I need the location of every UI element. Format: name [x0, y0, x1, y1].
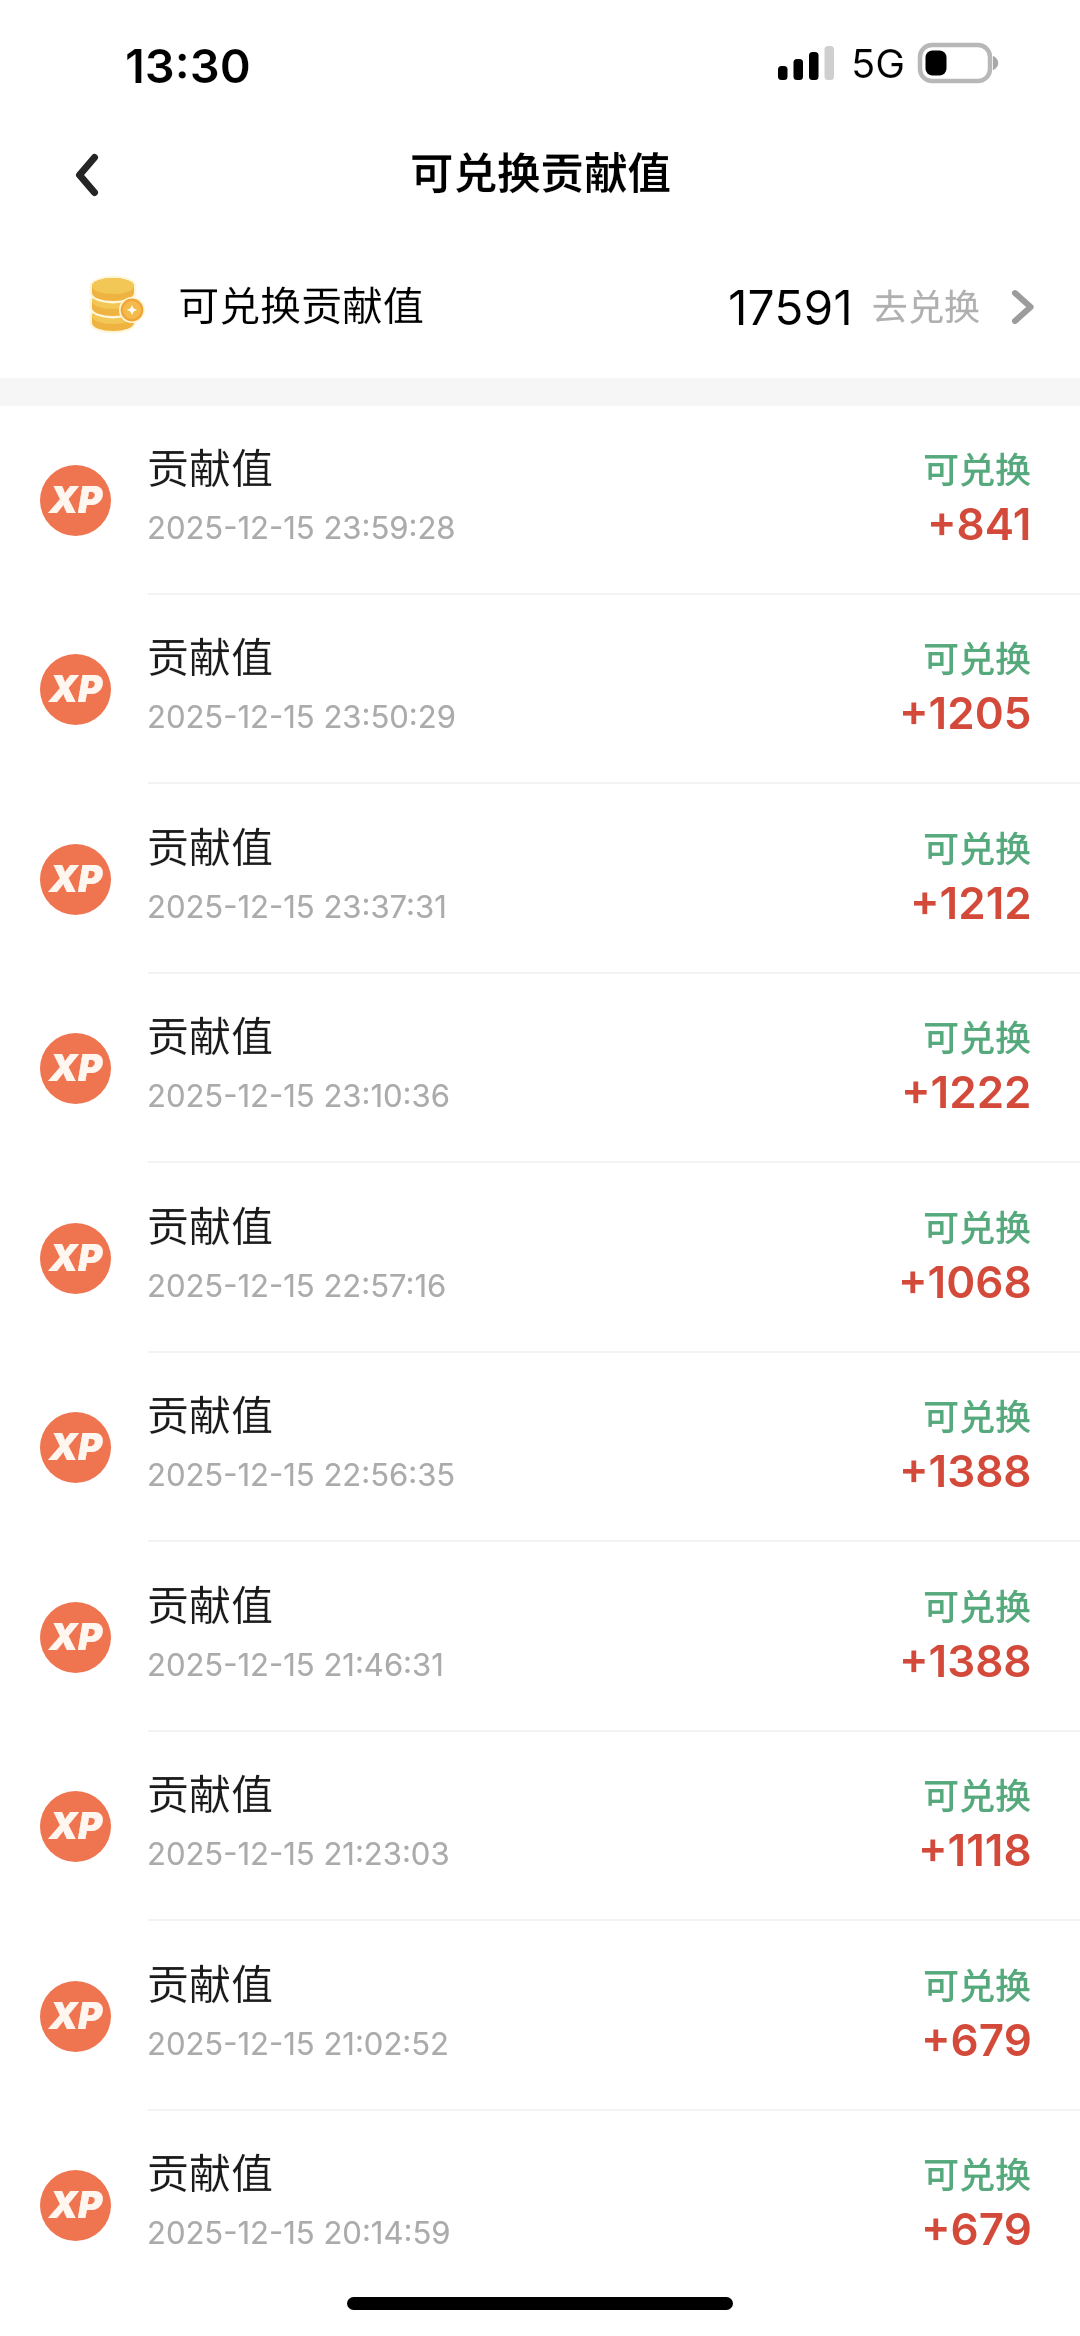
- staticText: 可兑换: [923, 1767, 1032, 1819]
- staticText: 可兑换贡献值: [410, 139, 671, 202]
- staticText: 17591: [728, 278, 853, 336]
- staticText: XP: [49, 1045, 103, 1090]
- staticText: +1118: [918, 1823, 1032, 1876]
- staticText: 可兑换: [923, 630, 1032, 682]
- button[interactable]: XP: [0, 2111, 1080, 2300]
- staticText: 2025-12-15 23:59:28: [147, 509, 456, 547]
- button[interactable]: XP: [0, 1732, 1080, 1921]
- button[interactable]: 可兑换贡献值: [0, 240, 1080, 378]
- staticText: 贡献值: [147, 1572, 274, 1633]
- staticText: +1205: [899, 686, 1032, 739]
- button[interactable]: XP: [0, 1922, 1080, 2111]
- staticText: 贡献值: [147, 814, 274, 875]
- button[interactable]: XP: [0, 974, 1080, 1163]
- staticText: 贡献值: [147, 1003, 274, 1064]
- staticText: 可兑换: [923, 1199, 1032, 1251]
- staticText: 贡献值: [147, 435, 274, 496]
- button[interactable]: XP: [0, 785, 1080, 974]
- staticText: 贡献值: [147, 1761, 274, 1822]
- staticText: 2025-12-15 20:14:59: [147, 2214, 451, 2252]
- staticText: +1388: [899, 1634, 1032, 1687]
- staticText: XP: [49, 2182, 103, 2227]
- staticText: 贡献值: [147, 1382, 274, 1443]
- staticText: XP: [49, 1993, 103, 2038]
- staticText: +679: [921, 2202, 1032, 2255]
- staticText: 2025-12-15 22:56:35: [147, 1456, 456, 1494]
- staticText: XP: [49, 1235, 103, 1280]
- staticText: 2025-12-15 21:46:31: [147, 1646, 444, 1684]
- button[interactable]: XP: [0, 1164, 1080, 1353]
- staticText: 2025-12-15 21:02:52: [147, 2025, 450, 2063]
- staticText: 可兑换: [923, 1578, 1032, 1630]
- staticText: 2025-12-15 22:57:16: [147, 1267, 447, 1305]
- staticText: 可兑换贡献值: [178, 273, 424, 332]
- staticText: XP: [49, 1614, 103, 1659]
- staticText: +1222: [901, 1065, 1032, 1118]
- button[interactable]: XP: [0, 1353, 1080, 1542]
- staticText: 可兑换: [923, 2146, 1032, 2198]
- staticText: +1388: [899, 1444, 1032, 1497]
- staticText: 2025-12-15 21:23:03: [147, 1835, 450, 1873]
- staticText: +1212: [910, 876, 1032, 929]
- staticText: 贡献值: [147, 1193, 274, 1254]
- staticText: 可兑换: [923, 1388, 1032, 1440]
- staticText: 贡献值: [147, 1951, 274, 2012]
- staticText: XP: [49, 1424, 103, 1469]
- staticText: XP: [49, 477, 103, 522]
- button[interactable]: XP: [0, 406, 1080, 595]
- staticText: XP: [49, 856, 103, 901]
- staticText: XP: [49, 666, 103, 711]
- staticText: 可兑换: [923, 441, 1032, 493]
- button[interactable]: XP: [0, 595, 1080, 784]
- staticText: 贡献值: [147, 2140, 274, 2201]
- staticText: 5G: [851, 39, 906, 87]
- staticText: 可兑换: [923, 1957, 1032, 2009]
- staticText: 可兑换: [923, 1009, 1032, 1061]
- staticText: 贡献值: [147, 624, 274, 685]
- staticText: +841: [927, 497, 1032, 550]
- staticText: 2025-12-15 23:50:29: [147, 698, 456, 736]
- staticText: +679: [921, 2013, 1032, 2066]
- staticText: XP: [49, 1803, 103, 1848]
- staticText: 13:30: [125, 37, 251, 94]
- button[interactable]: XP: [0, 1543, 1080, 1732]
- button[interactable]: Back: [36, 128, 138, 230]
- staticText: 2025-12-15 23:37:31: [147, 888, 447, 926]
- staticText: 2025-12-15 23:10:36: [147, 1077, 450, 1115]
- staticText: +1068: [898, 1255, 1032, 1308]
- staticText: 可兑换: [923, 820, 1032, 872]
- staticText: 去兑换: [872, 278, 981, 330]
